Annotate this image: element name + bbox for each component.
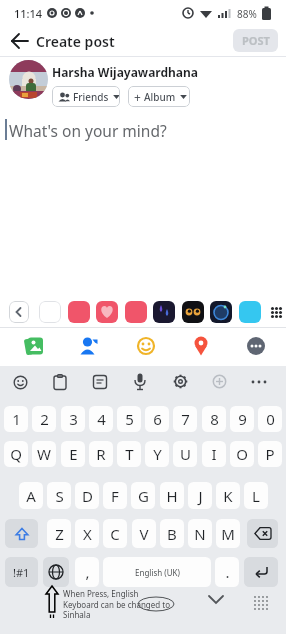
button[interactable]: U [173, 441, 197, 467]
staticText: 2 [40, 409, 49, 429]
button[interactable]: F [103, 482, 127, 509]
button[interactable]: T [117, 441, 141, 467]
button[interactable] [4, 26, 34, 56]
button[interactable] [203, 592, 229, 608]
button[interactable] [125, 301, 147, 323]
button[interactable] [43, 557, 69, 587]
button[interactable]: M [216, 519, 240, 548]
button[interactable] [182, 301, 204, 323]
button[interactable] [5, 519, 38, 548]
staticText: D [82, 486, 93, 506]
button[interactable] [192, 335, 210, 358]
button[interactable] [247, 519, 278, 548]
staticText: W [37, 444, 51, 464]
button[interactable]: + [128, 86, 190, 107]
staticText: 9 [238, 409, 247, 429]
button[interactable]: J [188, 482, 212, 509]
button[interactable]: H [160, 482, 184, 509]
button[interactable]: A [19, 482, 43, 509]
button[interactable] [9, 60, 48, 99]
button[interactable]: S [47, 482, 71, 509]
staticText: Z [55, 524, 64, 544]
button[interactable]: 7 [173, 406, 197, 432]
button[interactable]: 0 [258, 406, 282, 432]
button[interactable]: 6 [145, 406, 169, 432]
button[interactable]: R [89, 441, 113, 467]
button[interactable] [250, 375, 268, 389]
button[interactable]: N [188, 519, 212, 548]
button[interactable] [173, 374, 188, 389]
staticText: C [110, 524, 120, 544]
button[interactable] [246, 336, 266, 356]
staticText: 88% [237, 7, 257, 21]
button[interactable] [79, 336, 99, 356]
button[interactable] [239, 301, 261, 323]
button[interactable]: Friends [52, 86, 120, 107]
staticText: N [194, 524, 206, 544]
button[interactable]: 4 [89, 406, 113, 432]
staticText: What's on your mind? [9, 120, 167, 141]
button[interactable]: 9 [230, 406, 254, 432]
staticText: H [166, 486, 178, 506]
button[interactable] [96, 301, 118, 323]
button[interactable]: P [258, 441, 282, 467]
button[interactable] [252, 594, 270, 612]
button[interactable] [68, 301, 90, 323]
staticText: Y [153, 444, 162, 464]
staticText: U [180, 444, 191, 464]
button[interactable]: . [215, 557, 239, 587]
staticText: Harsha Wijayawardhana [52, 64, 199, 80]
button[interactable]: E [61, 441, 85, 467]
staticText: M [221, 524, 235, 544]
staticText: 4 [97, 409, 106, 429]
button[interactable]: 2 [32, 406, 56, 432]
staticText: S [55, 486, 64, 506]
staticText: Keyboard can be changed to [63, 599, 171, 610]
staticText: L [252, 486, 260, 506]
button[interactable]: X [75, 519, 99, 548]
staticText: !#1 [13, 565, 30, 580]
button[interactable]: 1 [4, 406, 28, 432]
button[interactable] [153, 301, 175, 323]
button[interactable] [9, 301, 29, 323]
button[interactable] [133, 373, 147, 391]
staticText: O [236, 444, 248, 464]
staticText: Sinhala [63, 609, 91, 620]
button[interactable] [136, 336, 156, 356]
button[interactable]: D [75, 482, 99, 509]
button[interactable]: 5 [117, 406, 141, 432]
button[interactable]: Z [47, 519, 71, 548]
staticText: 3 [69, 409, 78, 429]
button[interactable] [244, 557, 278, 587]
button[interactable]: 3 [61, 406, 85, 432]
button[interactable]: !#1 [5, 557, 38, 587]
button[interactable]: I [202, 441, 226, 467]
button[interactable] [13, 375, 28, 390]
button[interactable] [210, 301, 232, 323]
button[interactable]: Q [4, 441, 28, 467]
button[interactable] [53, 374, 67, 390]
button[interactable]: , [75, 557, 99, 587]
button[interactable]: V [132, 519, 156, 548]
button[interactable]: Y [145, 441, 169, 467]
button[interactable]: K [216, 482, 240, 509]
staticText: Friends [73, 90, 109, 104]
button[interactable]: L [244, 482, 268, 509]
button[interactable]: W [32, 441, 56, 467]
staticText: When Press, English [63, 588, 139, 599]
staticText: 1 [12, 409, 21, 429]
button[interactable]: O [230, 441, 254, 467]
staticText: B [167, 524, 177, 544]
button[interactable] [39, 301, 61, 323]
button[interactable]: G [131, 482, 155, 509]
button[interactable] [24, 336, 44, 356]
button[interactable]: C [103, 519, 127, 548]
button[interactable]: 8 [202, 406, 226, 432]
button[interactable]: English (UK) [103, 557, 211, 587]
button[interactable]: B [160, 519, 184, 548]
staticText: English (UK) [135, 567, 180, 578]
button[interactable] [212, 374, 227, 389]
button[interactable] [93, 375, 107, 389]
button[interactable]: POST [233, 29, 278, 52]
button[interactable] [267, 301, 286, 323]
